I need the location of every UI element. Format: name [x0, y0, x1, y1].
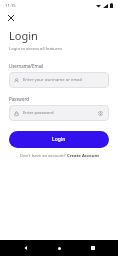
- staticText: Password: [9, 96, 29, 102]
- button[interactable]: Create Account: [67, 153, 99, 159]
- button[interactable]: Enter password: [9, 105, 109, 121]
- button[interactable]: Show password: [96, 109, 104, 117]
- button[interactable]: Login: [9, 131, 109, 148]
- staticText: Don't have an account?: [20, 153, 67, 159]
- button[interactable]: Enter your username or email: [9, 72, 109, 88]
- staticText: Enter password: [23, 110, 54, 116]
- button[interactable]: Close: [5, 12, 17, 24]
- staticText: Username/Email: [9, 63, 44, 69]
- staticText: Enter your username or email: [23, 77, 82, 83]
- button[interactable]: Back: [18, 240, 34, 256]
- button[interactable]: Home: [51, 240, 67, 256]
- staticText: 11:15: [5, 3, 16, 9]
- staticText: Login to access all features: [9, 46, 62, 52]
- staticText: Create Account: [67, 153, 99, 159]
- staticText: Login: [9, 28, 38, 43]
- staticText: Login: [52, 136, 66, 143]
- button[interactable]: Recents: [85, 240, 101, 256]
